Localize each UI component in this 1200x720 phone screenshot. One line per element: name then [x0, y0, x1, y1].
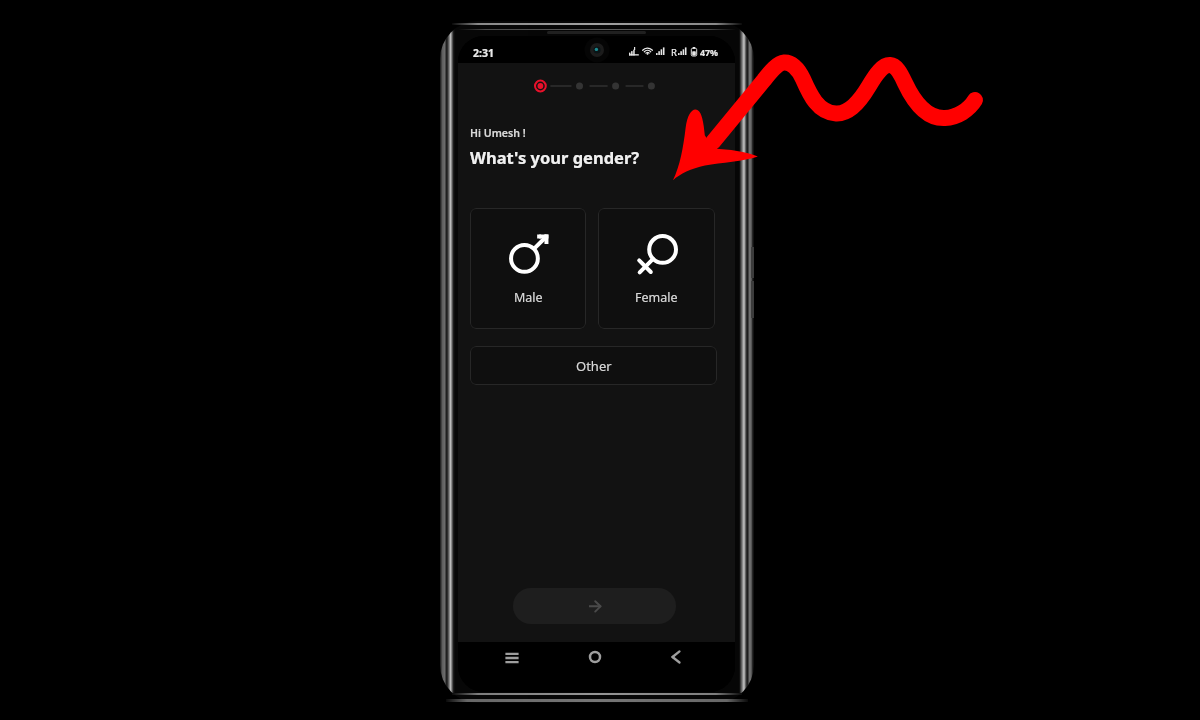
button[interactable]: Other	[470, 346, 717, 385]
button[interactable]: Recents	[495, 641, 529, 675]
staticText: 2:31	[473, 46, 494, 60]
staticText: Male	[514, 289, 543, 306]
staticText: Female	[635, 289, 678, 306]
button[interactable]: Back	[659, 640, 693, 674]
staticText: What's your gender?	[470, 146, 640, 168]
button[interactable]: Home	[578, 640, 612, 674]
staticText: 47%	[700, 47, 718, 59]
staticText: Other	[576, 357, 612, 375]
staticText: R	[671, 46, 677, 59]
button[interactable]: Next	[513, 588, 676, 624]
button[interactable]: Male	[470, 208, 586, 329]
staticText: Hi Umesh !	[470, 126, 526, 140]
button[interactable]: Female	[598, 208, 715, 329]
